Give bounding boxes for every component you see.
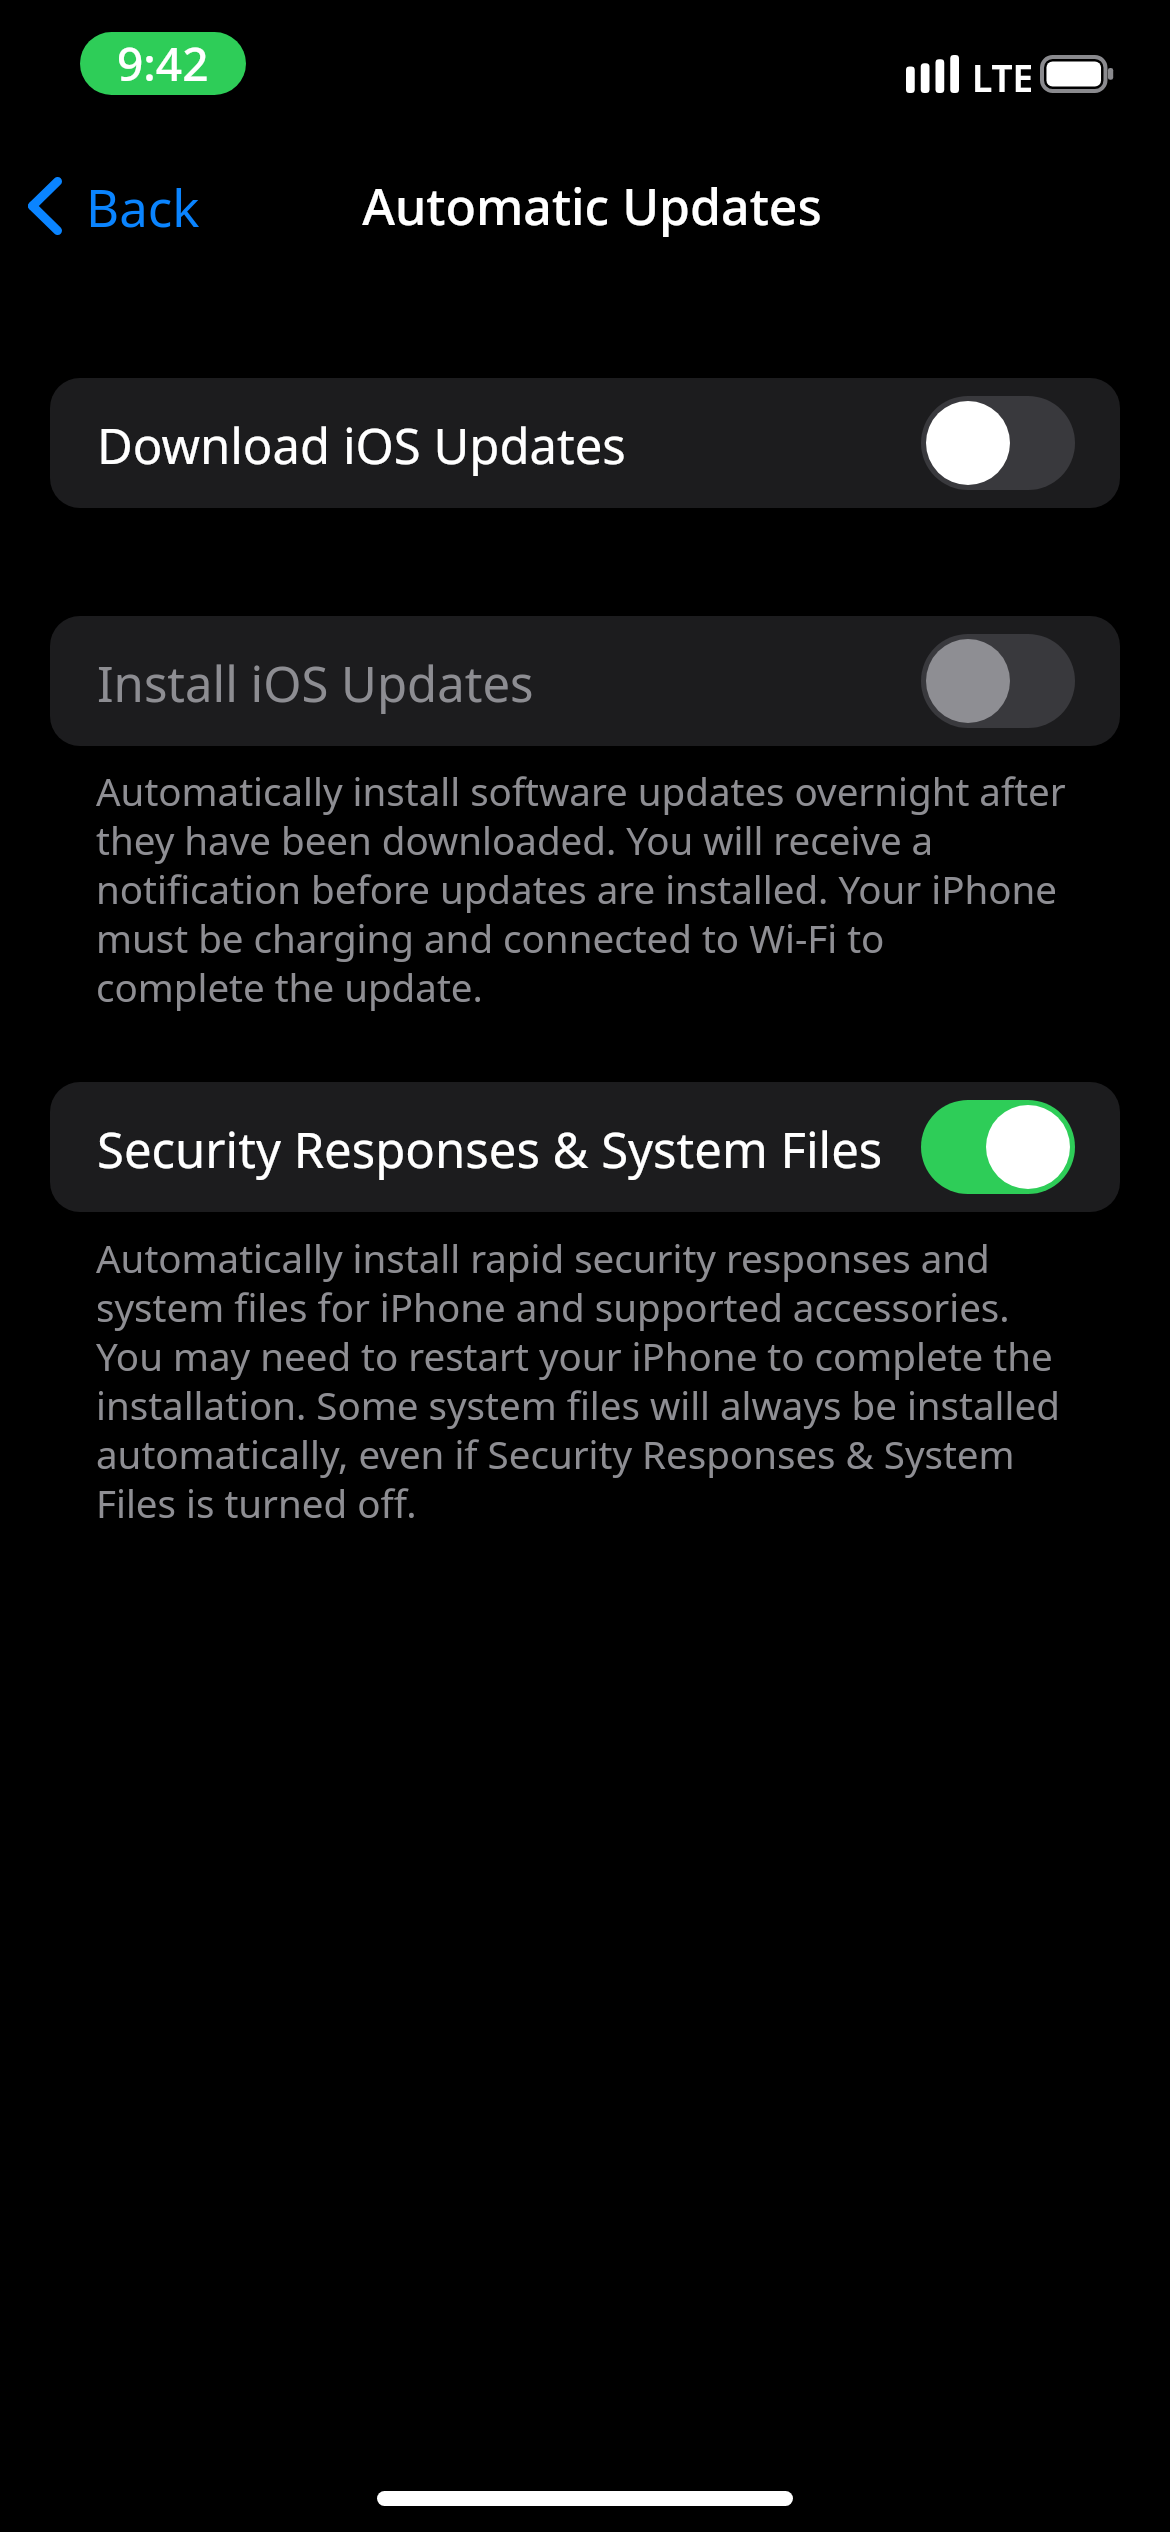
staticText: LTE <box>972 52 1034 102</box>
button[interactable]: Download iOS Updates <box>50 378 1120 508</box>
button[interactable]: Download iOS Updates switch <box>921 396 1075 490</box>
button[interactable]: Security Responses & System Files switch <box>921 1100 1075 1194</box>
staticText: Back <box>86 172 200 241</box>
button[interactable]: Install iOS Updates <box>50 616 1120 746</box>
button[interactable]: Security Responses & System Files <box>50 1082 1120 1212</box>
staticText: Install iOS Updates <box>97 650 534 717</box>
staticText: 9:42 <box>117 32 209 95</box>
staticText: Security Responses & System Files <box>97 1116 883 1183</box>
staticText: Download iOS Updates <box>97 412 626 479</box>
staticText: Automatically install software updates o… <box>96 768 1170 1013</box>
staticText: Automatically install rapid security res… <box>96 1235 1170 1529</box>
button: Install iOS Updates switch <box>921 634 1075 728</box>
staticText: Automatic Updates <box>7 172 1170 240</box>
button[interactable]: Back <box>14 163 214 249</box>
